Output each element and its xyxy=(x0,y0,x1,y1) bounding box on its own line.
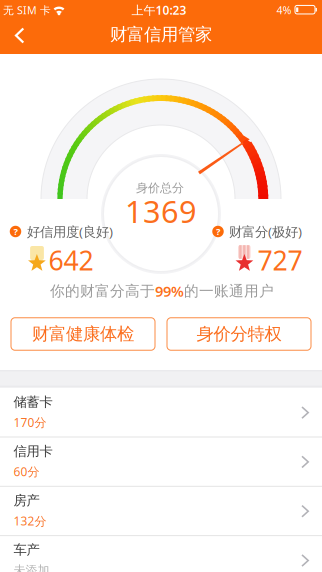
staticText: 财富健康体检 xyxy=(32,323,134,345)
staticText: 财富分(极好) xyxy=(229,223,302,240)
staticText: 身价总分 xyxy=(136,181,184,195)
button[interactable]: 财富健康体检 xyxy=(11,318,155,350)
staticText: 4% xyxy=(276,3,291,17)
staticText: 无 SIM 卡 xyxy=(3,3,51,17)
button[interactable]: 车产 xyxy=(0,536,322,572)
staticText: 信用卡 xyxy=(13,443,52,459)
staticText: 未添加 xyxy=(13,563,49,572)
staticText: 170分 xyxy=(13,414,46,430)
button[interactable]: 身价分特权 xyxy=(167,318,311,350)
staticText: 132分 xyxy=(13,513,46,529)
staticText: 房产 xyxy=(13,492,39,509)
staticText: 60分 xyxy=(13,464,39,479)
button[interactable]: 好信用度说明 xyxy=(9,225,22,238)
staticText: 99% xyxy=(155,281,184,301)
staticText: 好信用度(良好) xyxy=(27,223,113,240)
staticText: 你的财富分高于 xyxy=(50,282,155,300)
staticText: 642 xyxy=(48,242,93,278)
button[interactable]: 财富分说明 xyxy=(211,225,224,238)
button[interactable]: 储蓄卡 xyxy=(0,388,322,437)
staticText: 的一账通用户 xyxy=(184,282,274,300)
button[interactable]: 信用卡 xyxy=(0,437,322,487)
staticText: 727 xyxy=(257,242,302,278)
staticText: ? xyxy=(13,225,17,238)
button[interactable]: Back xyxy=(0,21,44,49)
staticText: 储蓄卡 xyxy=(13,394,52,410)
staticText: 上午10:23 xyxy=(131,2,186,18)
staticText: 车产 xyxy=(13,542,39,558)
staticText: 财富信用管家 xyxy=(110,24,212,45)
staticText: ? xyxy=(216,225,220,238)
staticText: 身价分特权 xyxy=(196,323,281,345)
staticText: 1369 xyxy=(125,191,197,231)
button[interactable]: 房产 xyxy=(0,487,322,536)
